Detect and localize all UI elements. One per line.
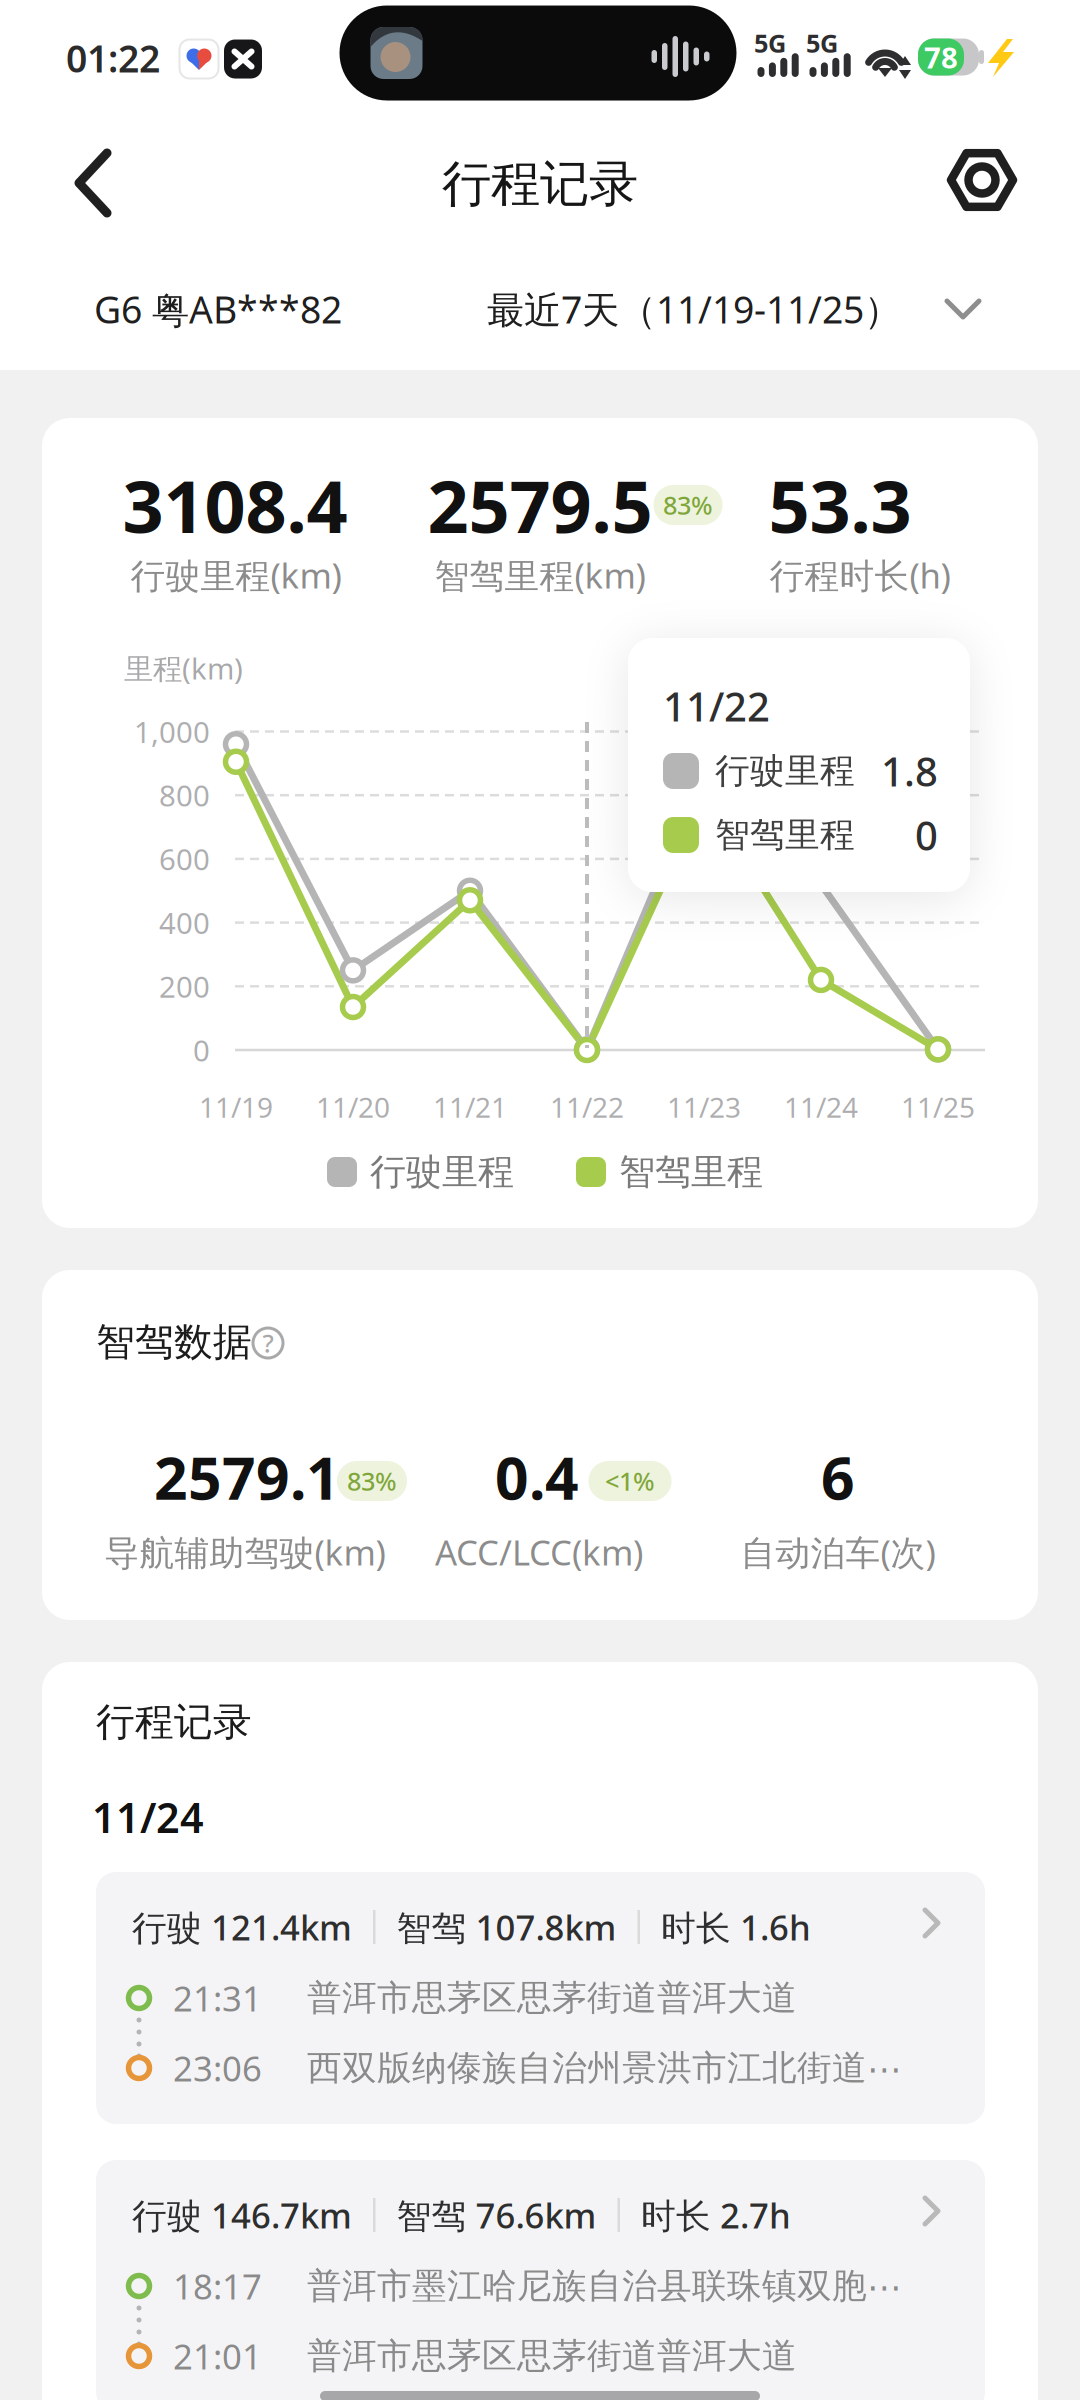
button[interactable]: G6 粤AB***82 <box>94 274 514 344</box>
button[interactable]: 最近7天（11/19-11/25） <box>487 274 1007 344</box>
staticText: 智驾数据 <box>96 1318 252 1366</box>
staticText: 里程(km) <box>124 648 243 687</box>
staticText: 5G <box>806 26 838 60</box>
staticText: G6 粤AB***82 <box>94 284 342 334</box>
staticText: 行驶里程 <box>715 750 855 792</box>
staticText: 行程时长(h) <box>769 552 950 598</box>
staticText: 行驶 121.4km <box>132 1904 352 1950</box>
staticText: 11/22 <box>550 1088 624 1126</box>
staticText: 600 <box>159 839 210 878</box>
staticText: 21:31 <box>173 1975 262 2021</box>
staticText: 400 <box>159 903 210 942</box>
staticText: 智驾 107.8km <box>396 1904 616 1950</box>
button[interactable]: Back <box>71 147 115 219</box>
staticText: 11/22 <box>663 679 770 732</box>
staticText: 1,000 <box>134 712 210 751</box>
staticText: 800 <box>159 776 210 815</box>
staticText: <1% <box>605 1464 655 1498</box>
button[interactable]: Settings <box>942 140 1022 220</box>
staticText: 行驶 146.7km <box>132 2192 352 2238</box>
staticText: 导航辅助驾驶(km) <box>104 1529 385 1575</box>
staticText: 11/21 <box>433 1088 507 1126</box>
staticText: 行程记录 <box>442 154 638 214</box>
staticText: 行驶里程 <box>370 1150 514 1194</box>
button[interactable]: 行驶 146.7km <box>96 2160 985 2400</box>
staticText: 18:17 <box>173 2263 262 2309</box>
staticText: 时长 1.6h <box>661 1904 811 1950</box>
staticText: 2579.1 <box>154 1438 340 1516</box>
staticText: 普洱市思茅区思茅街道普洱大道 <box>307 1977 797 2019</box>
staticText: 11/19 <box>199 1088 273 1126</box>
staticText: 普洱市墨江哈尼族自治县联珠镇双胞⋯ <box>307 2265 902 2307</box>
staticText: ? <box>262 1326 273 1360</box>
staticText: 0 <box>193 1030 210 1069</box>
staticText: 行程记录 <box>96 1698 252 1746</box>
staticText: 0.4 <box>495 1438 579 1516</box>
staticText: 83% <box>347 1464 397 1498</box>
staticText: 智驾里程 <box>715 814 855 856</box>
staticText: 11/24 <box>784 1088 858 1126</box>
button[interactable]: 行驶 121.4km <box>96 1872 985 2124</box>
staticText: 时长 2.7h <box>641 2192 791 2238</box>
staticText: 智驾 76.6km <box>396 2192 596 2238</box>
staticText: 53.3 <box>768 457 911 553</box>
staticText: 01:22 <box>66 33 160 83</box>
staticText: 200 <box>159 967 210 1006</box>
staticText: 1.8 <box>881 744 938 797</box>
staticText: 最近7天（11/19-11/25） <box>487 284 901 334</box>
button[interactable]: Help <box>246 1321 290 1365</box>
staticText: 自动泊车(次) <box>740 1529 935 1575</box>
staticText: ACC/LCC(km) <box>435 1529 643 1575</box>
staticText: 普洱市思茅区思茅街道普洱大道 <box>307 2335 797 2377</box>
staticText: 3108.4 <box>122 457 347 553</box>
staticText: 21:01 <box>173 2333 262 2379</box>
staticText: 智驾里程 <box>619 1150 763 1194</box>
staticText: 11/23 <box>667 1088 741 1126</box>
staticText: 23:06 <box>173 2045 262 2091</box>
staticText: 西双版纳傣族自治州景洪市江北街道⋯ <box>307 2047 902 2089</box>
staticText: 6 <box>821 1438 855 1516</box>
staticText: 11/25 <box>901 1088 975 1126</box>
staticText: 智驾里程(km) <box>434 552 645 598</box>
staticText: 78 <box>924 37 958 76</box>
staticText: 2579.5 <box>427 457 652 553</box>
staticText: 11/24 <box>92 1790 204 1844</box>
staticText: 5G <box>754 26 786 60</box>
staticText: 0 <box>915 808 938 861</box>
staticText: 11/20 <box>316 1088 390 1126</box>
staticText: 行驶里程(km) <box>130 552 341 598</box>
staticText: 83% <box>663 488 713 522</box>
